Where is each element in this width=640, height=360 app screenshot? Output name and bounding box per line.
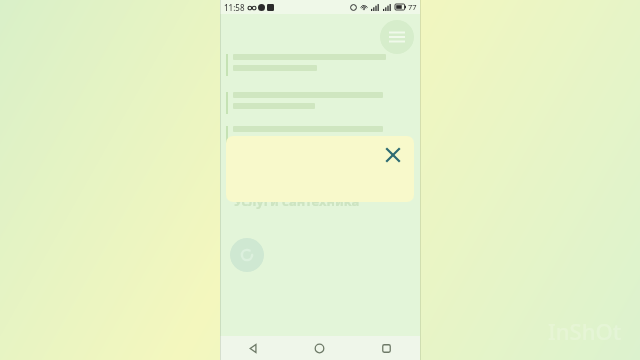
button[interactable]: Home [286, 336, 353, 360]
staticText: 77 [408, 2, 417, 12]
button[interactable]: Recents [353, 336, 420, 360]
button[interactable]: Call [230, 238, 264, 272]
button[interactable]: Close [380, 142, 406, 168]
button[interactable]: Menu [380, 20, 414, 54]
button[interactable]: Close [226, 136, 414, 202]
staticText: Услуги сантехника [234, 192, 360, 210]
button[interactable]: Back [220, 336, 286, 360]
staticText: 11:58 [224, 2, 245, 13]
staticText: InShOt [548, 316, 622, 346]
